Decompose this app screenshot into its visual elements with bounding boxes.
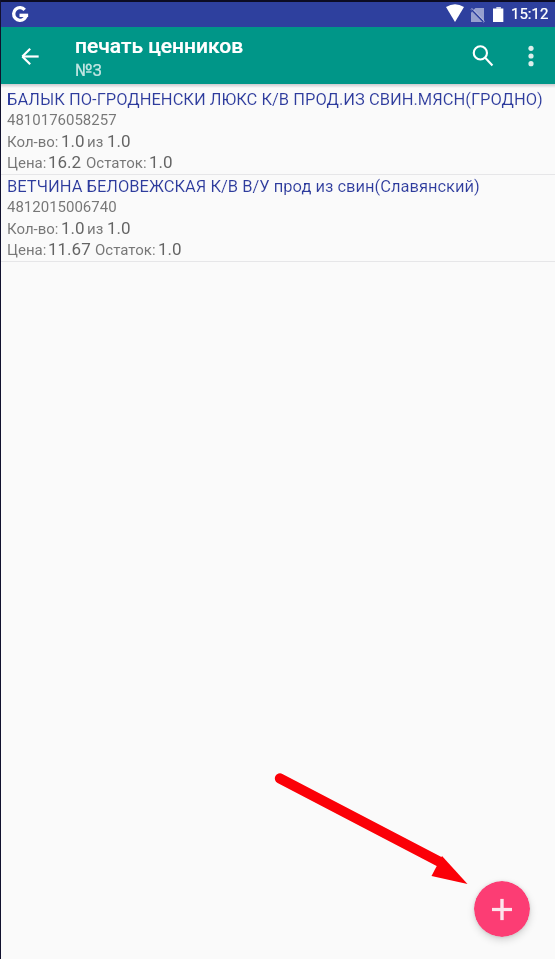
staticText: ВЕТЧИНА БЕЛОВЕЖСКАЯ К/В В/У прод из свин… [7,177,480,196]
staticText: 1.0 [107,218,131,238]
button[interactable]: Add [474,881,530,937]
staticText: 4810176058257 [7,111,117,129]
staticText: БАЛЫК ПО-ГРОДНЕНСКИ ЛЮКС К/В ПРОД.ИЗ СВИ… [7,90,543,109]
button[interactable]: БАЛЫК ПО-ГРОДНЕНСКИ ЛЮКС К/В ПРОД.ИЗ СВИ… [0,88,555,175]
button[interactable]: More options [507,32,555,80]
staticText: из [87,133,104,151]
staticText: Цена: [7,154,47,172]
staticText: Цена: [7,241,47,259]
button[interactable]: Back [6,32,54,80]
staticText: 1.0 [158,239,182,259]
staticText: Кол-во: [7,220,59,238]
staticText: №3 [75,60,103,80]
staticText: 16.2 [48,152,82,172]
staticText: 4812015006740 [7,198,117,216]
staticText: 1.0 [107,131,131,151]
staticText: из [87,220,104,238]
staticText: Остаток: [86,154,147,172]
staticText: 15:12 [511,5,549,23]
staticText: Кол-во: [7,133,59,151]
staticText: Остаток: [95,241,156,259]
staticText: 11.67 [48,239,91,259]
staticText: печать ценников [75,34,244,59]
button[interactable]: ВЕТЧИНА БЕЛОВЕЖСКАЯ К/В В/У прод из свин… [0,175,555,262]
staticText: 1.0 [149,152,173,172]
button[interactable]: Search [459,32,507,80]
staticText: 1.0 [61,131,85,151]
staticText: 1.0 [61,218,85,238]
